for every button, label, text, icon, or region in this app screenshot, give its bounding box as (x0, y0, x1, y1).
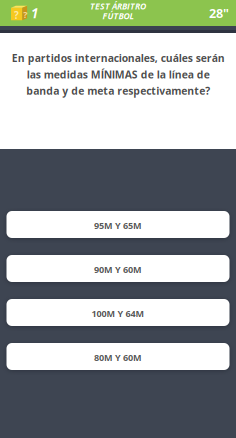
staticText: 100M Y 64M (91, 307, 144, 320)
staticText: En partidos internacionales, cuáles será… (11, 51, 224, 98)
button[interactable]: 95M Y 65M (6, 211, 229, 238)
staticText: 28" (209, 4, 229, 22)
staticText: 80M Y 60M (94, 351, 142, 364)
staticText: 1 (31, 4, 38, 22)
staticText: ? (23, 9, 27, 21)
staticText: 95M Y 65M (94, 219, 142, 232)
button[interactable]: 90M Y 60M (6, 255, 229, 282)
staticText: TEST ÁRBITRO (90, 0, 146, 12)
button[interactable]: 100M Y 64M (6, 299, 229, 326)
button[interactable]: Comodines disponibles (0, 0, 44, 26)
staticText: ? (14, 8, 19, 22)
staticText: 90M Y 60M (94, 263, 142, 276)
staticText: FÚTBOL (102, 10, 133, 22)
button[interactable]: 80M Y 60M (6, 343, 229, 370)
